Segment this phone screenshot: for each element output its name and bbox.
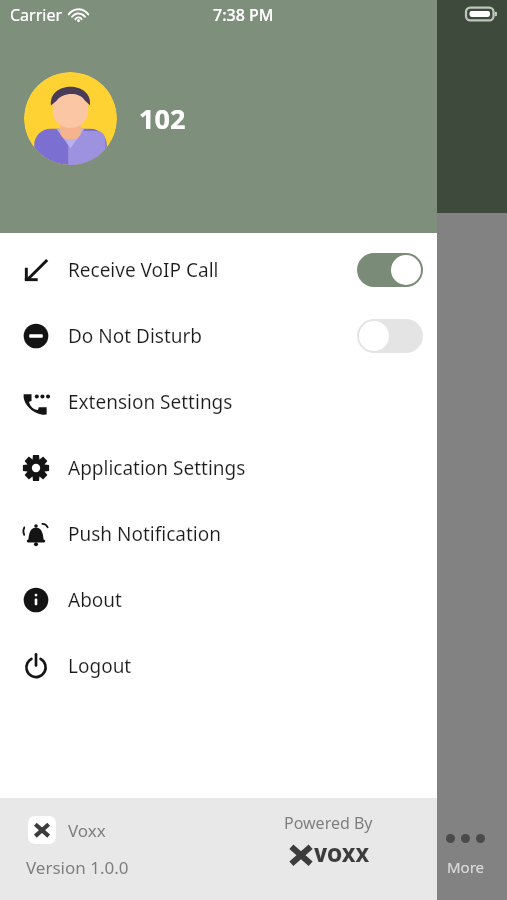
staticText: Voxx: [68, 819, 106, 842]
button[interactable]: About: [0, 567, 437, 633]
staticText: About: [68, 587, 122, 613]
staticText: VOXX: [314, 842, 370, 868]
staticText: Powered By: [284, 812, 373, 834]
staticText: 102: [139, 100, 186, 137]
staticText: Logout: [68, 653, 132, 679]
staticText: Do Not Disturb: [68, 323, 203, 349]
button[interactable]: Do Not Disturb: [0, 303, 437, 369]
staticText: More: [447, 857, 485, 877]
button[interactable]: Push Notification: [0, 501, 437, 567]
staticText: Carrier: [10, 4, 63, 26]
staticText: Push Notification: [68, 521, 221, 547]
button[interactable]: Receive VoIP Call toggle: [357, 253, 423, 287]
staticText: 7:38 PM: [213, 4, 274, 26]
staticText: Version 1.0.0: [26, 856, 129, 879]
staticText: Extension Settings: [68, 389, 233, 415]
button[interactable]: Receive VoIP Call: [0, 237, 437, 303]
button[interactable]: Do Not Disturb toggle: [357, 319, 423, 353]
button[interactable]: Application Settings: [0, 435, 437, 501]
button[interactable]: Extension Settings: [0, 369, 437, 435]
staticText: Application Settings: [68, 455, 246, 481]
button[interactable]: Logout: [0, 633, 437, 699]
button[interactable]: Profile picture: [24, 72, 117, 165]
staticText: Receive VoIP Call: [68, 257, 219, 283]
